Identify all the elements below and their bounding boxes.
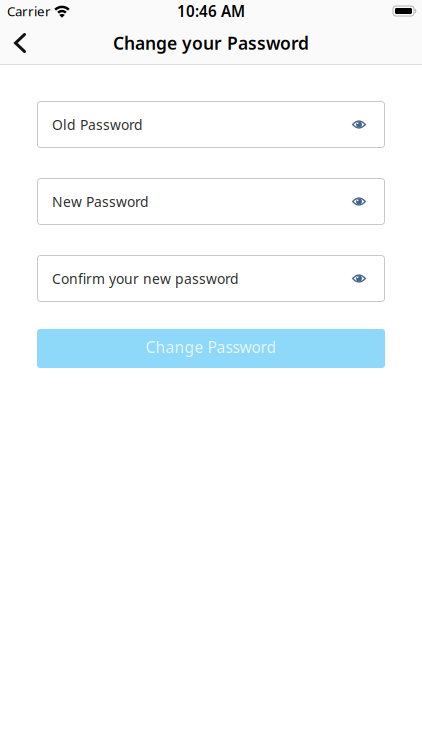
- staticText: Carrier: [7, 2, 51, 20]
- button[interactable]: Show password: [342, 256, 366, 300]
- button[interactable]: Back: [0, 22, 42, 64]
- button[interactable]: Change Password: [37, 329, 385, 368]
- button[interactable]: Show password: [342, 179, 366, 223]
- staticText: New Password: [52, 192, 149, 211]
- staticText: Confirm your new password: [52, 269, 239, 288]
- staticText: Change your Password: [113, 31, 309, 55]
- button[interactable]: New Password: [37, 178, 385, 225]
- button[interactable]: Old Password: [37, 101, 385, 148]
- button[interactable]: Confirm your new password: [37, 255, 385, 302]
- staticText: Change Password: [145, 336, 276, 358]
- button[interactable]: Show password: [342, 102, 366, 146]
- staticText: Old Password: [52, 115, 143, 134]
- staticText: 10:46 AM: [177, 1, 245, 21]
